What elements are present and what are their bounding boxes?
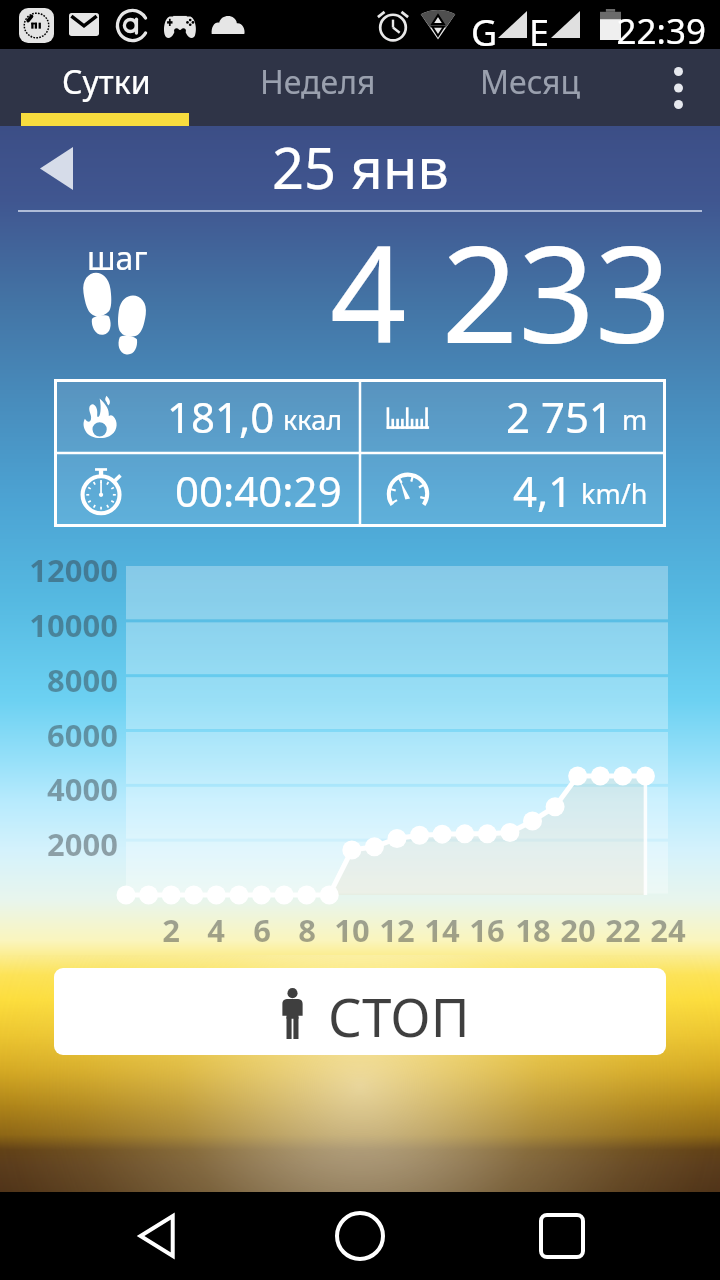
staticText: 8: [277, 909, 337, 951]
staticText: 2000: [0, 823, 118, 865]
staticText: 6: [232, 909, 292, 951]
staticText: Сутки: [62, 60, 151, 104]
staticText: 18: [503, 909, 563, 951]
button[interactable]: Back: [114, 1192, 202, 1280]
button[interactable]: 4,1: [384, 453, 648, 527]
staticText: G: [471, 8, 498, 57]
button[interactable]: Сутки: [0, 49, 212, 126]
staticText: СТОП: [328, 980, 470, 1052]
staticText: 22:39: [616, 7, 706, 55]
staticText: 4: [186, 909, 246, 951]
staticText: 12000: [0, 549, 118, 591]
staticText: km/h: [581, 475, 648, 512]
staticText: 20: [548, 909, 608, 951]
staticText: Неделя: [260, 60, 376, 104]
staticText: E: [529, 8, 550, 57]
staticText: 14: [412, 909, 472, 951]
staticText: 2 751: [506, 388, 614, 445]
button[interactable]: 181,0: [78, 379, 342, 453]
staticText: Месяц: [480, 60, 581, 104]
staticText: 00:40:29: [175, 462, 342, 519]
button[interactable]: Неделя: [212, 49, 424, 126]
staticText: m: [622, 401, 648, 438]
staticText: 181,0: [167, 388, 275, 445]
staticText: 4,1: [513, 462, 573, 519]
staticText: 10000: [0, 604, 118, 646]
staticText: 25 янв: [272, 129, 449, 205]
staticText: 10: [322, 909, 382, 951]
staticText: 8000: [0, 659, 118, 701]
button[interactable]: СТОП: [54, 968, 666, 1055]
button[interactable]: More options: [636, 49, 720, 126]
staticText: 6000: [0, 714, 118, 756]
button[interactable]: 2 751: [384, 379, 648, 453]
staticText: 4000: [0, 768, 118, 810]
staticText: 16: [457, 909, 517, 951]
button[interactable]: Home: [316, 1192, 404, 1280]
staticText: 2: [141, 909, 201, 951]
button[interactable]: Месяц: [424, 49, 636, 126]
staticText: 24: [638, 909, 698, 951]
button[interactable]: 00:40:29: [78, 453, 342, 527]
staticText: шаг: [87, 236, 148, 280]
staticText: ккал: [283, 401, 342, 438]
button[interactable]: Previous day: [40, 147, 73, 190]
staticText: 22: [593, 909, 653, 951]
staticText: 4 233: [330, 200, 672, 358]
staticText: 12: [367, 909, 427, 951]
button[interactable]: Recents: [518, 1192, 606, 1280]
